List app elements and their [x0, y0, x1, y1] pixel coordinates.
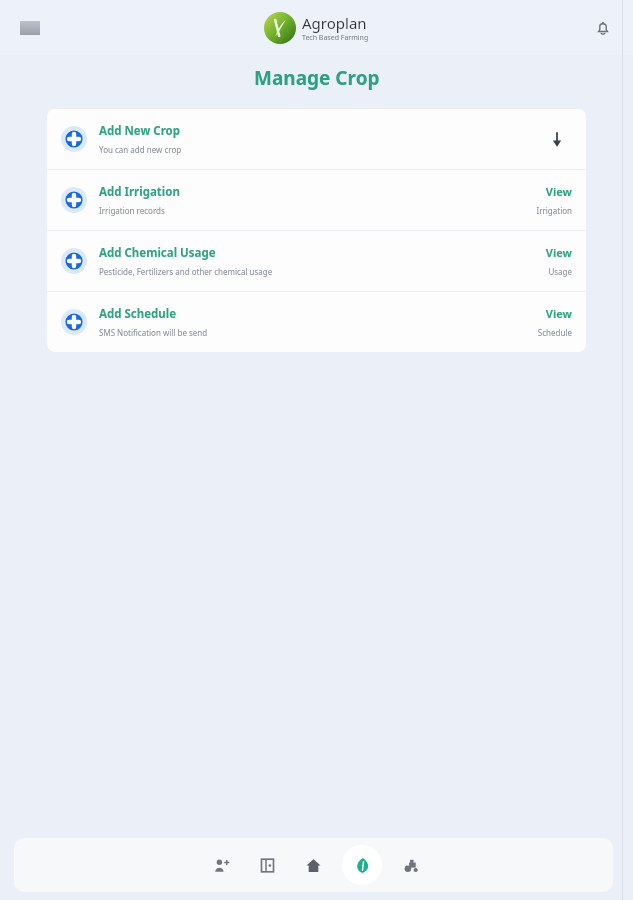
button[interactable]: Home: [296, 848, 330, 882]
staticText: Agroplan: [302, 13, 367, 33]
button[interactable]: View: [539, 245, 572, 277]
staticText: SMS Notification will be send: [99, 327, 208, 338]
button[interactable]: Add Schedule: [47, 292, 586, 352]
staticText: Pesticide, Fertilizers and other chemica…: [99, 266, 273, 277]
button[interactable]: Crops: [342, 845, 382, 885]
staticText: Add Chemical Usage: [99, 245, 216, 261]
button[interactable]: Add Chemical Usage: [47, 231, 586, 291]
staticText: Add New Crop: [99, 123, 181, 139]
button[interactable]: View: [530, 184, 572, 216]
staticText: View: [545, 184, 572, 199]
staticText: Irrigation: [536, 205, 572, 216]
staticText: Add Schedule: [99, 306, 177, 322]
staticText: Add Irrigation: [99, 184, 180, 200]
staticText: Schedule: [537, 327, 572, 338]
button[interactable]: View: [531, 306, 572, 338]
button[interactable]: Notifications: [587, 12, 619, 44]
button[interactable]: Menu: [12, 10, 48, 46]
staticText: Usage: [548, 266, 572, 277]
staticText: Tech Based Farming: [302, 33, 369, 43]
staticText: View: [545, 245, 572, 260]
staticText: Irrigation records: [99, 205, 165, 216]
button[interactable]: Add New Crop: [47, 109, 586, 169]
button[interactable]: Records: [250, 848, 284, 882]
staticText: Manage Crop: [254, 65, 380, 91]
button[interactable]: Add Irrigation: [47, 170, 586, 230]
button[interactable]: Download: [542, 124, 572, 154]
staticText: You can add new crop: [99, 144, 182, 155]
button[interactable]: Profile: [204, 848, 238, 882]
button[interactable]: Equipment: [394, 848, 428, 882]
staticText: View: [545, 306, 572, 321]
